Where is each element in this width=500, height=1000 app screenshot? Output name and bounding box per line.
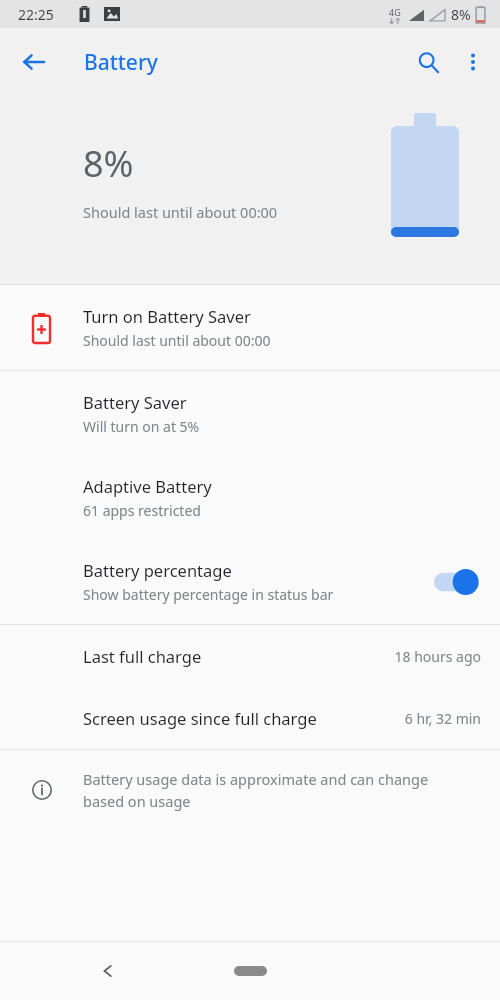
- staticText: 8%: [451, 5, 471, 24]
- staticText: based on usage: [83, 791, 191, 811]
- staticText: Battery usage data is approximate and ca…: [83, 769, 429, 789]
- button[interactable]: Screen usage since full charge: [0, 687, 500, 749]
- button[interactable]: Turn on Battery Saver: [0, 285, 500, 370]
- staticText: Show battery percentage in status bar: [83, 585, 334, 604]
- button[interactable]: Last full charge: [0, 625, 500, 687]
- staticText: Screen usage since full charge: [83, 707, 404, 729]
- button[interactable]: Adaptive Battery: [0, 455, 500, 539]
- staticText: Battery percentage: [83, 559, 232, 581]
- staticText: 22:25: [18, 5, 54, 24]
- button[interactable]: Back: [86, 949, 130, 993]
- button[interactable]: Home: [220, 956, 280, 986]
- button[interactable]: Battery percentage: [0, 539, 500, 624]
- staticText: 4G: [389, 6, 401, 18]
- staticText: 6 hr, 32 min: [404, 709, 481, 728]
- staticText: 8%: [83, 139, 134, 188]
- staticText: Adaptive Battery: [83, 475, 212, 497]
- button[interactable]: Battery Saver: [0, 371, 500, 455]
- staticText: Should last until about 00:00: [83, 202, 278, 222]
- staticText: Will turn on at 5%: [83, 417, 200, 436]
- staticText: Last full charge: [83, 645, 394, 667]
- staticText: 18 hours ago: [394, 647, 481, 666]
- staticText: 61 apps restricted: [83, 501, 201, 520]
- button[interactable]: More options: [452, 38, 494, 86]
- staticText: Turn on Battery Saver: [83, 305, 251, 327]
- button[interactable]: Search: [404, 38, 452, 86]
- staticText: Should last until about 00:00: [83, 331, 271, 350]
- staticText: Battery Saver: [83, 391, 187, 413]
- button[interactable]: Back: [10, 38, 58, 86]
- staticText: Battery: [84, 48, 158, 77]
